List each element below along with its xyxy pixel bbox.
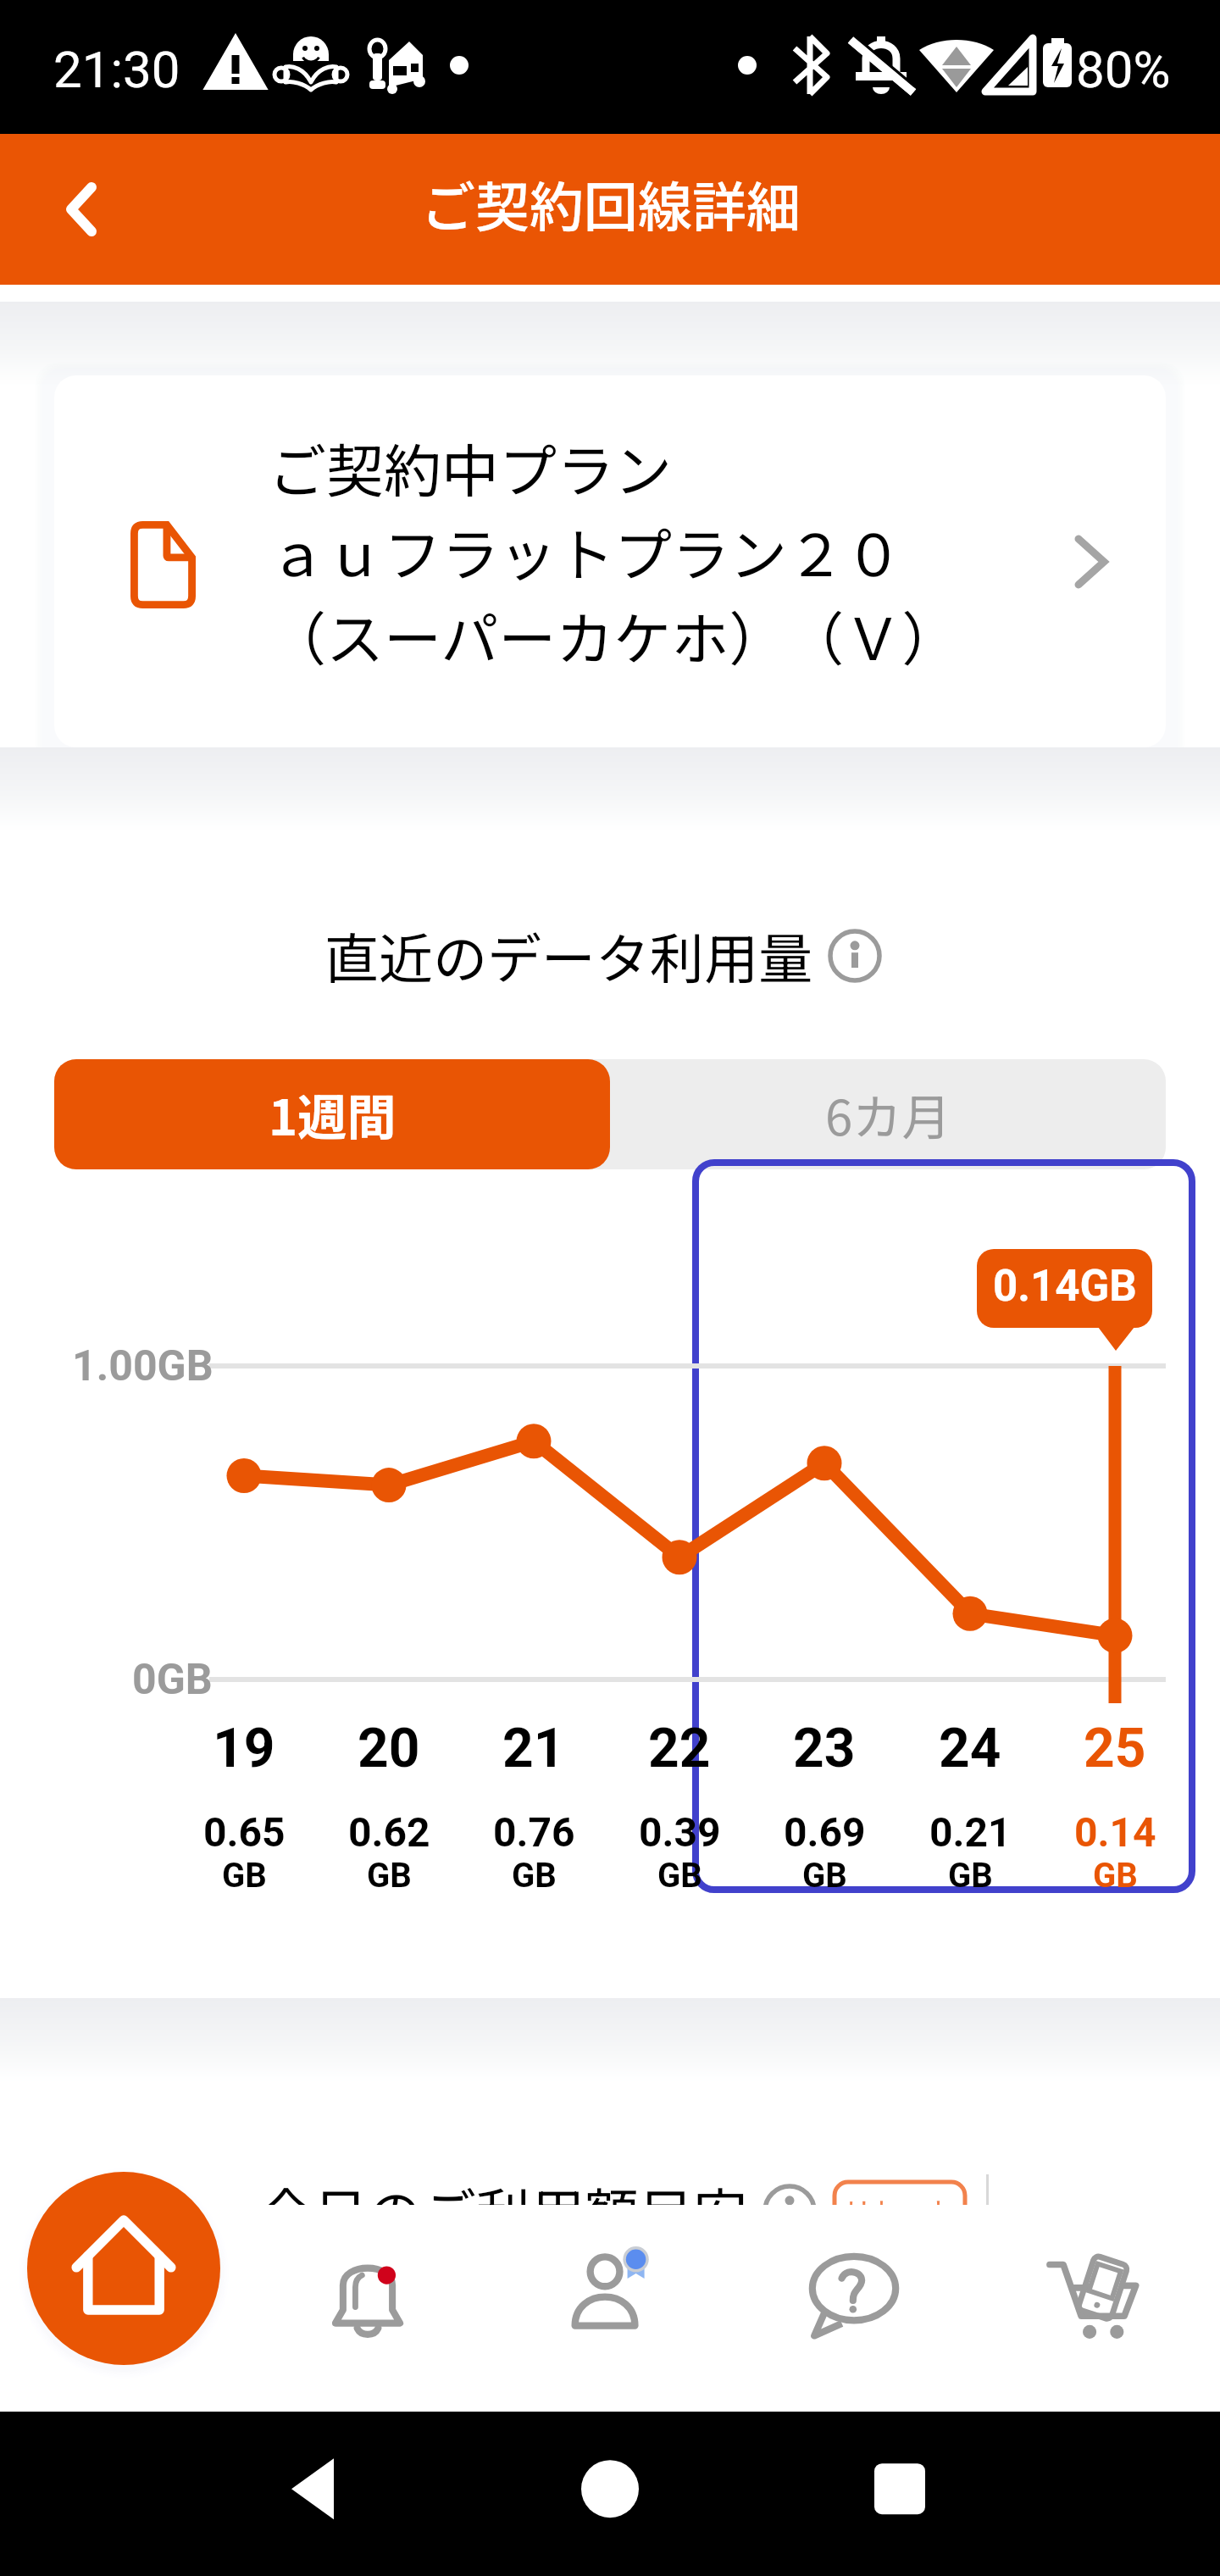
staticText: GB bbox=[1093, 1856, 1138, 1896]
staticText: 0.76 bbox=[493, 1808, 575, 1856]
staticText: 21 bbox=[502, 1717, 565, 1780]
button[interactable]: Cart bbox=[976, 2205, 1220, 2412]
staticText: 22 bbox=[648, 1717, 711, 1780]
staticText: リセット bbox=[844, 2190, 956, 2231]
button[interactable]: Help bbox=[732, 2205, 976, 2412]
staticText: 0.14GB bbox=[993, 1261, 1137, 1312]
button[interactable]: Back bbox=[0, 142, 136, 277]
staticText: ご契約回線詳細 bbox=[421, 164, 801, 243]
staticText: 21:30 bbox=[53, 40, 180, 99]
staticText: GB bbox=[948, 1856, 993, 1896]
staticText: 1週間 bbox=[269, 1079, 396, 1150]
staticText: GB bbox=[802, 1856, 847, 1896]
button[interactable]: リセット bbox=[832, 2179, 968, 2242]
staticText: 直近のデータ利用量 bbox=[324, 916, 812, 995]
staticText: GB bbox=[512, 1856, 557, 1896]
staticText: 今日のご利用額目安 bbox=[259, 2171, 747, 2250]
staticText: 0.14 bbox=[1074, 1808, 1156, 1856]
staticText: ご契約中プラン ａｕフラットプラン２０ （スーパーカケホ）（Ｖ） bbox=[269, 425, 960, 677]
staticText: 0.62 bbox=[348, 1808, 430, 1856]
staticText: 0.39 bbox=[639, 1808, 721, 1856]
button[interactable]: Notifications bbox=[246, 2205, 489, 2412]
staticText: 23 bbox=[793, 1717, 856, 1780]
staticText: 0.65 bbox=[203, 1808, 286, 1856]
staticText: 0.21 bbox=[929, 1808, 1012, 1856]
staticText: 0.69 bbox=[784, 1808, 866, 1856]
staticText: 0GB bbox=[132, 1655, 213, 1705]
staticText: 1.00GB bbox=[72, 1341, 213, 1391]
staticText: 6カ月 bbox=[825, 1079, 951, 1150]
staticText: GB bbox=[657, 1856, 702, 1896]
staticText: GB bbox=[222, 1856, 267, 1896]
button[interactable]: Home bbox=[27, 2172, 220, 2365]
staticText: 24 bbox=[939, 1717, 1001, 1780]
staticText: 20 bbox=[358, 1717, 420, 1780]
staticText: 80% bbox=[1076, 40, 1171, 99]
button[interactable]: 1週間 bbox=[54, 1059, 610, 1169]
button[interactable]: Account bbox=[489, 2205, 732, 2412]
button[interactable]: ご契約中プラン ａｕフラットプラン２０ （スーパーカケホ）（Ｖ） bbox=[54, 375, 1166, 747]
button[interactable]: 6カ月 bbox=[610, 1059, 1166, 1169]
staticText: 19 bbox=[213, 1717, 275, 1780]
staticText: 25 bbox=[1084, 1717, 1146, 1780]
staticText: GB bbox=[367, 1856, 412, 1896]
